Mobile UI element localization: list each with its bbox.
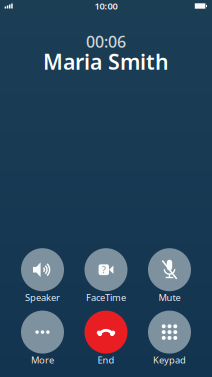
staticText: Speaker [25,291,60,304]
button[interactable]: Speaker [11,248,74,304]
staticText: Keypad [153,354,186,366]
button[interactable]: Mute [138,248,201,304]
staticText: 10:00 [94,0,117,12]
staticText: FaceTime [86,291,126,304]
button[interactable]: ? [74,248,138,304]
button[interactable]: More [11,311,74,366]
button[interactable]: End [74,311,138,366]
staticText: End [97,354,114,366]
staticText: 00:06 [86,31,126,52]
button[interactable]: Keypad [138,311,201,366]
staticText: More [31,354,54,366]
staticText: Mute [158,291,180,304]
staticText: ? [102,263,106,276]
staticText: Maria Smith [43,47,169,75]
